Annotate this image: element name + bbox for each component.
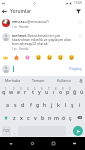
- staticText: e: [17, 88, 20, 95]
- staticText: n: [48, 114, 52, 121]
- button[interactable]: l: [62, 98, 69, 111]
- staticText: b: [41, 114, 45, 121]
- button[interactable]: m: [53, 111, 60, 124]
- button[interactable]: b: [39, 111, 46, 124]
- button[interactable]: j: [48, 98, 55, 111]
- button[interactable]: Filter: [73, 6, 83, 16]
- staticText: ?123: [3, 129, 10, 133]
- staticText: ü: [80, 88, 84, 95]
- button[interactable]: Like: [77, 33, 83, 39]
- button[interactable]: ?123: [2, 126, 11, 136]
- button[interactable]: .: [66, 126, 73, 136]
- button[interactable]: Keyboard indicator: [64, 137, 85, 150]
- button[interactable]: Hide keyboard: [0, 137, 22, 150]
- button[interactable]: mehmet Bonushesabi en çok kazandıran etk…: [2, 33, 83, 51]
- staticText: Kullanıcı: [57, 78, 72, 83]
- button[interactable]: e: [15, 85, 22, 98]
- staticText: y: [38, 88, 41, 95]
- button[interactable]: Emoji: [57, 54, 64, 61]
- button[interactable]: g: [34, 98, 41, 111]
- staticText: x: [20, 114, 23, 121]
- staticText: 1: [5, 87, 7, 91]
- button[interactable]: Shift: [0, 111, 11, 124]
- staticText: 5: [34, 87, 36, 91]
- staticText: p: [66, 88, 70, 95]
- staticText: ö: [62, 114, 66, 121]
- button[interactable]: Backspace: [74, 111, 85, 124]
- button[interactable]: Emoji: [35, 54, 42, 61]
- staticText: v: [34, 114, 37, 121]
- staticText: 1sa: [12, 47, 17, 51]
- button[interactable]: z: [11, 111, 18, 124]
- staticText: Paylaş: [69, 66, 82, 72]
- staticText: m: [54, 114, 59, 121]
- button[interactable]: Like: [77, 19, 83, 25]
- staticText: a: [6, 101, 9, 108]
- button[interactable]: Recents: [43, 137, 64, 150]
- button[interactable]: Emoji: [24, 54, 31, 61]
- button[interactable]: Back: [0, 6, 9, 16]
- button[interactable]: o: [57, 85, 64, 98]
- staticText: emu.az.c@emir.ausul1: [12, 19, 50, 24]
- button[interactable]: r: [22, 85, 29, 98]
- button[interactable]: ü: [78, 85, 85, 98]
- button[interactable]: y: [36, 85, 43, 98]
- staticText: u: [45, 88, 49, 95]
- button[interactable]: Emoji: [68, 54, 75, 61]
- button[interactable]: i: [76, 98, 83, 111]
- staticText: 3: [20, 87, 22, 91]
- button[interactable]: h: [41, 98, 48, 111]
- button[interactable]: s: [11, 98, 19, 111]
- button[interactable]: Emoji: [46, 54, 53, 61]
- button[interactable]: x: [18, 111, 25, 124]
- button[interactable]: Tamam: [25, 76, 51, 85]
- staticText: 0: [69, 87, 71, 91]
- button[interactable]: ı: [50, 85, 57, 98]
- staticText: 4: [27, 87, 29, 91]
- button[interactable]: f: [27, 98, 34, 111]
- staticText: t: [32, 88, 34, 95]
- staticText: i: [79, 101, 81, 108]
- staticText: ğ: [73, 88, 77, 95]
- button[interactable]: Home: [22, 137, 43, 150]
- button[interactable]: ç: [67, 111, 74, 124]
- staticText: Yanıtla: [19, 47, 29, 51]
- button[interactable]: ö: [60, 111, 67, 124]
- staticText: d: [21, 101, 25, 108]
- staticText: 8: [55, 87, 57, 91]
- staticText: 9: [62, 87, 64, 91]
- button[interactable]: Emoji: [2, 54, 9, 61]
- button[interactable]: ,: [11, 126, 18, 136]
- staticText: q: [2, 88, 6, 95]
- staticText: r: [24, 88, 27, 95]
- button[interactable]: q: [0, 85, 8, 98]
- button[interactable]: Merhaba: [0, 76, 25, 85]
- button[interactable]: a: [3, 98, 11, 111]
- staticText: o: [59, 88, 63, 95]
- button[interactable]: emu.az.c@emir.ausul1: [2, 19, 83, 29]
- button[interactable]: ş: [69, 98, 76, 111]
- button[interactable]: ğ: [71, 85, 78, 98]
- button[interactable]: c: [25, 111, 32, 124]
- staticText: Tamam: [32, 78, 45, 83]
- button[interactable]: Paylaş: [68, 64, 83, 74]
- button[interactable]: Kullanıcı: [51, 76, 77, 85]
- button[interactable]: p: [64, 85, 71, 98]
- button[interactable]: t: [29, 85, 36, 98]
- button[interactable]: w: [8, 85, 15, 98]
- staticText: ş: [71, 101, 74, 108]
- button[interactable]: d: [19, 98, 27, 111]
- staticText: .: [69, 129, 71, 134]
- button[interactable]: n: [46, 111, 53, 124]
- staticText: 13:05: [74, 1, 83, 5]
- staticText: 7: [48, 87, 50, 91]
- button[interactable]: Emoji: [13, 54, 20, 61]
- staticText: 2: [13, 87, 15, 91]
- button[interactable]: k: [55, 98, 62, 111]
- button[interactable]: v: [32, 111, 39, 124]
- button[interactable]: Voice input: [77, 76, 85, 85]
- button[interactable]: u: [43, 85, 50, 98]
- button[interactable]: Send: [73, 126, 83, 136]
- staticText: h: [43, 101, 47, 108]
